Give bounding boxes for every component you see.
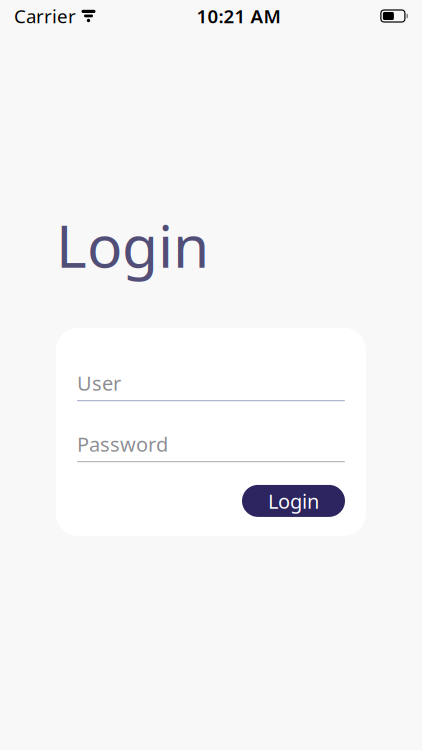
button[interactable]: Login xyxy=(242,485,345,517)
staticText: Login xyxy=(268,488,319,514)
staticText: Password xyxy=(77,431,168,457)
staticText: Login xyxy=(56,206,209,284)
staticText: Carrier xyxy=(14,4,76,28)
staticText: 10:21 AM xyxy=(196,4,280,28)
staticText: User xyxy=(77,370,121,396)
